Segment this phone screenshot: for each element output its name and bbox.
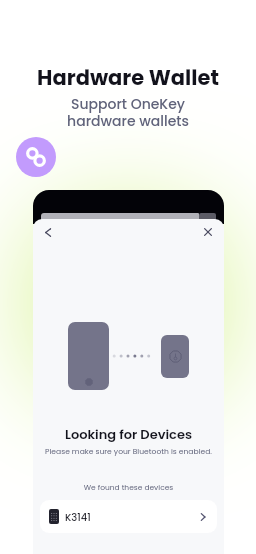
button[interactable]: Close	[198, 222, 218, 242]
staticText: Please make sure your Bluetooth is enabl…	[33, 446, 224, 457]
staticText: K3141	[65, 510, 91, 524]
button[interactable]: OneKey logo	[16, 137, 56, 177]
staticText: Looking for Devices	[33, 425, 224, 443]
staticText: Support OneKey hardware wallets	[0, 94, 256, 131]
staticText: We found these devices	[33, 482, 224, 492]
staticText: Hardware Wallet	[0, 63, 256, 92]
button[interactable]: K3141	[40, 500, 217, 533]
button[interactable]: Back	[38, 222, 58, 242]
